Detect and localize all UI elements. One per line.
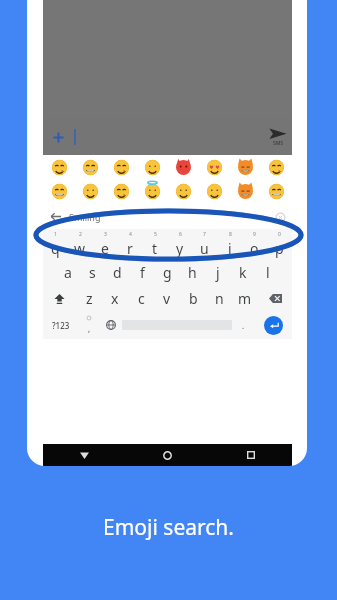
button[interactable]: Home — [126, 444, 209, 466]
button[interactable]: Comma — [78, 311, 100, 339]
button[interactable]: Emoji — [106, 155, 137, 179]
staticText: 4 — [129, 231, 132, 238]
button[interactable]: s — [80, 259, 105, 285]
button[interactable]: b — [180, 285, 206, 311]
staticText: y — [176, 239, 184, 258]
button[interactable]: z — [76, 285, 102, 311]
button[interactable]: j — [205, 259, 230, 285]
button[interactable]: m — [232, 285, 258, 311]
staticText: p — [275, 239, 284, 258]
staticText: . — [242, 320, 245, 331]
button[interactable]: l — [255, 259, 280, 285]
button[interactable]: 4 — [117, 229, 142, 259]
button[interactable]: Clear search — [272, 209, 288, 225]
button[interactable]: v — [154, 285, 180, 311]
staticText: d — [113, 263, 122, 282]
button[interactable]: 9 — [242, 229, 267, 259]
staticText: Smiling — [69, 211, 101, 223]
staticText: s — [89, 263, 96, 282]
staticText: g — [163, 263, 172, 282]
button[interactable]: 2 — [67, 229, 92, 259]
staticText: b — [189, 289, 198, 308]
button[interactable]: Emoji — [168, 179, 199, 203]
staticText: k — [239, 263, 247, 282]
staticText: 8 — [229, 231, 232, 238]
staticText: 1 — [54, 231, 57, 238]
button[interactable]: Change keyboard language — [100, 311, 122, 339]
button[interactable]: Shift — [43, 285, 76, 311]
button[interactable]: a — [55, 259, 80, 285]
button[interactable]: Back — [43, 444, 126, 466]
staticText: 0 — [278, 231, 281, 238]
button[interactable]: Back — [48, 209, 63, 224]
staticText: j — [216, 263, 220, 282]
button[interactable]: Emoji — [43, 179, 75, 203]
button[interactable]: ?123 — [43, 311, 78, 339]
staticText: t — [152, 239, 158, 258]
button[interactable]: Emoji — [199, 179, 230, 203]
button[interactable]: Emoji — [137, 179, 168, 203]
staticText: o — [250, 239, 259, 258]
button[interactable]: n — [206, 285, 232, 311]
button[interactable]: Enter — [264, 316, 283, 335]
staticText: m — [238, 289, 252, 308]
button[interactable]: 6 — [167, 229, 192, 259]
button[interactable]: x — [102, 285, 128, 311]
button[interactable]: Back — [43, 204, 292, 229]
staticText: c — [138, 289, 145, 308]
staticText: x — [111, 289, 119, 308]
button[interactable]: g — [155, 259, 180, 285]
staticText: i — [228, 239, 232, 258]
button[interactable]: k — [230, 259, 255, 285]
button[interactable]: Emoji — [168, 155, 199, 179]
staticText: 2 — [79, 231, 82, 238]
button[interactable]: Backspace — [258, 285, 292, 311]
staticText: Emoji search. — [0, 513, 337, 542]
button[interactable]: Emoji — [199, 155, 230, 179]
button[interactable]: f — [130, 259, 155, 285]
staticText: 9 — [253, 231, 256, 238]
staticText: z — [86, 289, 93, 308]
staticText: 6 — [179, 231, 182, 238]
staticText: SMS — [273, 140, 284, 147]
button[interactable]: 5 — [142, 229, 167, 259]
button[interactable]: Emoji — [106, 179, 137, 203]
button[interactable]: 8 — [217, 229, 242, 259]
staticText: , — [88, 323, 91, 334]
staticText: w — [74, 239, 86, 258]
button[interactable]: Emoji — [43, 155, 75, 179]
button[interactable]: Emoji — [230, 155, 261, 179]
button[interactable]: c — [128, 285, 154, 311]
staticText: h — [188, 263, 197, 282]
button[interactable]: . — [232, 311, 254, 339]
button[interactable]: Emoji — [75, 179, 106, 203]
staticText: n — [215, 289, 224, 308]
button[interactable]: d — [105, 259, 130, 285]
staticText: f — [140, 263, 145, 282]
button[interactable]: h — [180, 259, 205, 285]
staticText: e — [101, 239, 109, 258]
button[interactable]: Emoji — [75, 155, 106, 179]
button[interactable]: 3 — [92, 229, 117, 259]
staticText: 5 — [154, 231, 157, 238]
button[interactable]: Emoji — [261, 179, 292, 203]
staticText: u — [200, 239, 209, 258]
button[interactable]: 0 — [267, 229, 292, 259]
staticText: a — [64, 263, 72, 282]
staticText: r — [127, 239, 133, 258]
button[interactable]: Add attachment — [47, 126, 69, 148]
button[interactable]: Emoji — [261, 155, 292, 179]
button[interactable]: 1 — [43, 229, 67, 259]
button[interactable]: Emoji — [137, 155, 168, 179]
staticText: ?123 — [52, 320, 70, 331]
staticText: 3 — [104, 231, 107, 238]
staticText: 7 — [203, 231, 206, 238]
staticText: l — [266, 263, 270, 282]
staticText: q — [51, 239, 60, 258]
button[interactable]: 7 — [192, 229, 217, 259]
button[interactable]: Send SMS — [269, 127, 287, 147]
button[interactable]: Emoji — [230, 179, 261, 203]
button[interactable]: Recent apps — [209, 444, 292, 466]
staticText: v — [163, 289, 171, 308]
